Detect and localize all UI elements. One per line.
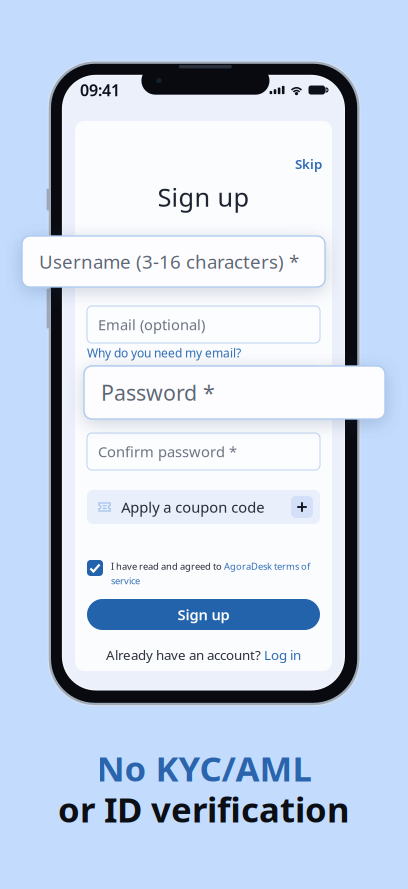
staticText: Confirm password *	[98, 442, 237, 461]
staticText: or ID verification	[58, 786, 350, 832]
button[interactable]: I have read and agreed to AgoraDesk term…	[87, 560, 320, 588]
staticText: Email (optional)	[98, 315, 205, 334]
button[interactable]: Password *	[87, 366, 320, 403]
staticText: Log in	[264, 646, 301, 664]
button[interactable]: Apply a coupon code	[87, 490, 320, 524]
button[interactable]: Email (optional)	[87, 306, 320, 343]
staticText: Password *	[101, 378, 215, 407]
button[interactable]: Sign up	[87, 599, 320, 630]
button[interactable]: Username (3-16 characters) *	[87, 240, 320, 277]
staticText: Username (3-16 characters) *	[39, 249, 299, 274]
staticText: Sign up	[157, 180, 249, 214]
staticText: Password *	[98, 375, 177, 394]
staticText: Already have an account?	[106, 646, 261, 664]
staticText: service	[111, 574, 140, 587]
staticText: 09:41	[80, 79, 120, 101]
staticText: Username (3-16 characters) *	[98, 249, 297, 268]
staticText: I have read and agreed to AgoraDesk term…	[111, 560, 310, 572]
button[interactable]: Confirm password *	[87, 433, 320, 470]
button[interactable]: Already have an account?	[87, 646, 320, 660]
staticText: Skip	[295, 155, 322, 173]
button[interactable]: Why do you need my email?	[87, 345, 267, 358]
staticText: Apply a coupon code	[121, 497, 264, 517]
staticText: Sign up	[177, 605, 229, 624]
staticText: Why do you need my email?	[87, 345, 241, 361]
staticText: No KYC/AML	[96, 745, 311, 791]
button[interactable]: Skip	[275, 155, 322, 169]
